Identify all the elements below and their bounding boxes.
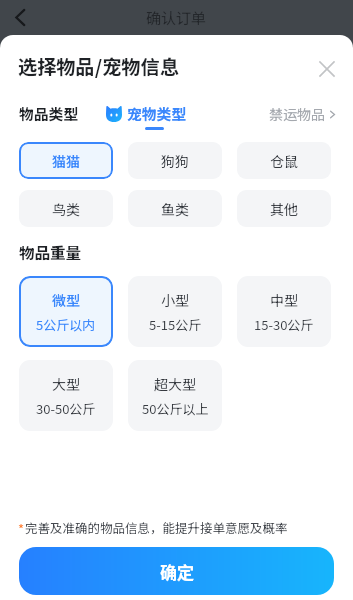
button[interactable]: 宠物类型	[106, 103, 187, 124]
staticText: 大型	[52, 374, 80, 394]
button[interactable]: Close	[314, 56, 340, 82]
staticText: *	[18, 519, 25, 538]
button[interactable]: 中型	[237, 276, 331, 347]
staticText: 50公斤以上	[142, 399, 209, 418]
button[interactable]: 微型	[19, 276, 113, 347]
button[interactable]: 狗狗	[128, 142, 222, 179]
button[interactable]: 超大型	[128, 360, 222, 431]
staticText: 微型	[52, 290, 80, 310]
button[interactable]: 鱼类	[128, 190, 222, 227]
staticText: 选择物品/宠物信息	[18, 52, 179, 80]
staticText: 物品重量	[19, 241, 82, 263]
staticText: 中型	[270, 290, 298, 310]
staticText: 猫猫	[52, 151, 80, 171]
staticText: 仓鼠	[270, 151, 298, 171]
button[interactable]: 禁运物品	[269, 104, 338, 124]
button[interactable]: 大型	[19, 360, 113, 431]
button[interactable]: Back	[2, 0, 38, 35]
button[interactable]: 确定	[19, 547, 334, 595]
staticText: 完善及准确的物品信息，能提升接单意愿及概率	[25, 518, 288, 536]
staticText: 30-50公斤	[36, 399, 96, 418]
staticText: 5-15公斤	[149, 315, 202, 334]
button[interactable]: 其他	[237, 190, 331, 227]
button[interactable]: 鸟类	[19, 190, 113, 227]
staticText: 宠物类型	[127, 103, 187, 124]
button[interactable]: 物品类型	[19, 103, 79, 124]
button[interactable]: 小型	[128, 276, 222, 347]
staticText: 15-30公斤	[254, 315, 314, 334]
staticText: 确定	[160, 559, 194, 584]
button[interactable]: 仓鼠	[237, 142, 331, 179]
staticText: 超大型	[154, 374, 196, 394]
staticText: 狗狗	[161, 151, 189, 171]
staticText: 其他	[270, 199, 298, 219]
staticText: 小型	[161, 290, 189, 310]
staticText: 鱼类	[161, 199, 189, 219]
staticText: 确认订单	[146, 7, 207, 29]
staticText: 禁运物品	[269, 104, 325, 124]
staticText: 物品类型	[19, 103, 79, 124]
button[interactable]: 猫猫	[19, 142, 113, 179]
staticText: 鸟类	[52, 199, 80, 219]
staticText: 5公斤以内	[36, 315, 96, 334]
